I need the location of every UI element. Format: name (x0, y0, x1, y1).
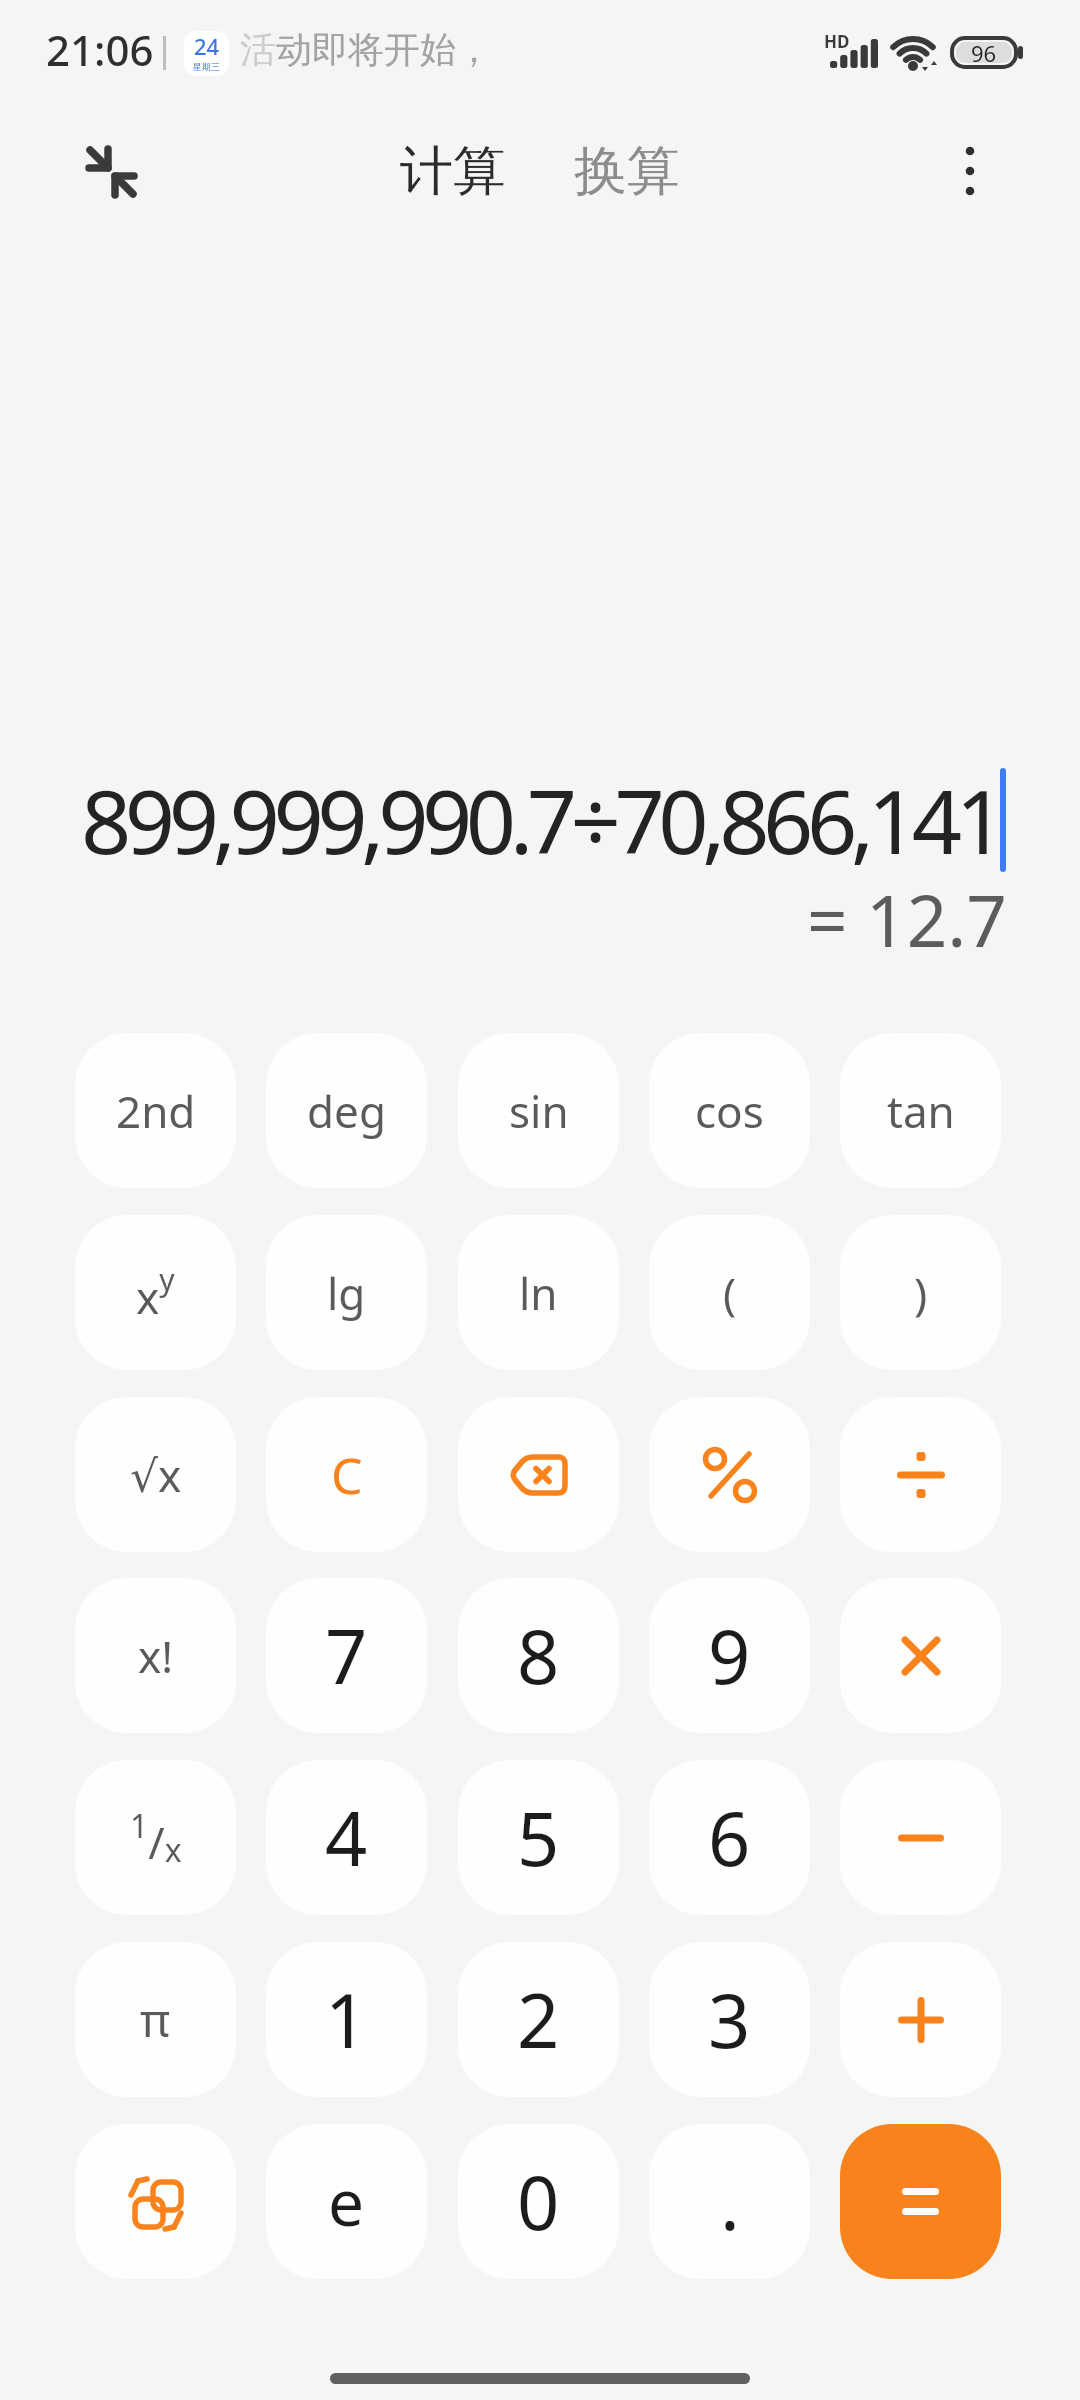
button[interactable]: tan (840, 1033, 1001, 1188)
button[interactable] (840, 1578, 1001, 1733)
staticText: 899,999,990.7÷70,866,141 (81, 760, 1000, 880)
staticText: 4 (325, 1787, 368, 1888)
staticText: ln (519, 1263, 558, 1323)
staticText: 21:06 (46, 21, 154, 77)
button[interactable]: 5 (458, 1760, 619, 1915)
button[interactable]: 9 (649, 1578, 810, 1733)
staticText: √x (130, 1445, 182, 1505)
staticText: 换算 (574, 138, 680, 204)
button[interactable]: 计算 (400, 138, 506, 204)
staticText: 2 (517, 1969, 560, 2070)
button[interactable]: x! (75, 1578, 236, 1733)
staticText: 1 (325, 1969, 368, 2070)
button[interactable]: cos (649, 1033, 810, 1188)
staticText: 3 (708, 1969, 751, 2070)
button[interactable]: 8 (458, 1578, 619, 1733)
staticText: 96 (971, 38, 997, 68)
button[interactable] (840, 2124, 1001, 2279)
staticText: 2nd (116, 1081, 196, 1141)
staticText: 8 (517, 1605, 560, 1706)
button[interactable]: 1 (266, 1942, 427, 2097)
button[interactable] (840, 1942, 1001, 2097)
button[interactable]: sin (458, 1033, 619, 1188)
staticText: 活动即将开始， (240, 27, 492, 72)
staticText: 计算 (400, 138, 506, 204)
button[interactable]: xy (75, 1215, 236, 1370)
button[interactable]: ( (649, 1215, 810, 1370)
button[interactable]: e (266, 2124, 427, 2279)
button[interactable]: ) (840, 1215, 1001, 1370)
staticText: . (720, 2151, 740, 2252)
button[interactable] (82, 142, 138, 198)
button[interactable] (458, 1397, 619, 1552)
button[interactable]: 4 (266, 1760, 427, 1915)
staticText: 5 (517, 1787, 560, 1888)
staticText: tan (887, 1081, 955, 1141)
staticText: 24 (194, 31, 220, 61)
button[interactable]: lg (266, 1215, 427, 1370)
staticText: 星期三 (193, 61, 220, 72)
staticText: 9 (708, 1605, 751, 1706)
staticText: ) (914, 1263, 928, 1323)
button[interactable] (956, 143, 984, 199)
staticText: 1/x (130, 1804, 182, 1872)
staticText: x! (138, 1626, 174, 1686)
button[interactable]: 2 (458, 1942, 619, 2097)
button[interactable]: 2nd (75, 1033, 236, 1188)
staticText: 0 (517, 2151, 560, 2252)
staticText: deg (307, 1081, 386, 1141)
button[interactable] (840, 1760, 1001, 1915)
staticText: cos (695, 1081, 764, 1141)
staticText: π (140, 1988, 171, 2051)
staticText: xy (136, 1259, 175, 1326)
button[interactable]: 1/x (75, 1760, 236, 1915)
button[interactable]: 3 (649, 1942, 810, 2097)
button[interactable]: π (75, 1942, 236, 2097)
button[interactable]: √x (75, 1397, 236, 1552)
staticText: lg (327, 1263, 366, 1323)
button[interactable]: 6 (649, 1760, 810, 1915)
staticText: e (328, 2158, 365, 2245)
button[interactable]: 7 (266, 1578, 427, 1733)
staticText: sin (509, 1081, 569, 1141)
button[interactable]: ln (458, 1215, 619, 1370)
button[interactable]: deg (266, 1033, 427, 1188)
staticText: HD (824, 30, 850, 53)
button[interactable] (649, 1397, 810, 1552)
button[interactable] (840, 1397, 1001, 1552)
button[interactable]: C (266, 1397, 427, 1552)
button[interactable]: 换算 (574, 138, 680, 204)
staticText: 7 (325, 1605, 368, 1706)
button[interactable] (75, 2124, 236, 2279)
staticText: = 12.7 (807, 871, 1007, 955)
button[interactable]: . (649, 2124, 810, 2279)
staticText: C (331, 1441, 363, 1509)
button[interactable]: 0 (458, 2124, 619, 2279)
staticText: 6 (708, 1787, 751, 1888)
staticText: ( (723, 1263, 737, 1323)
